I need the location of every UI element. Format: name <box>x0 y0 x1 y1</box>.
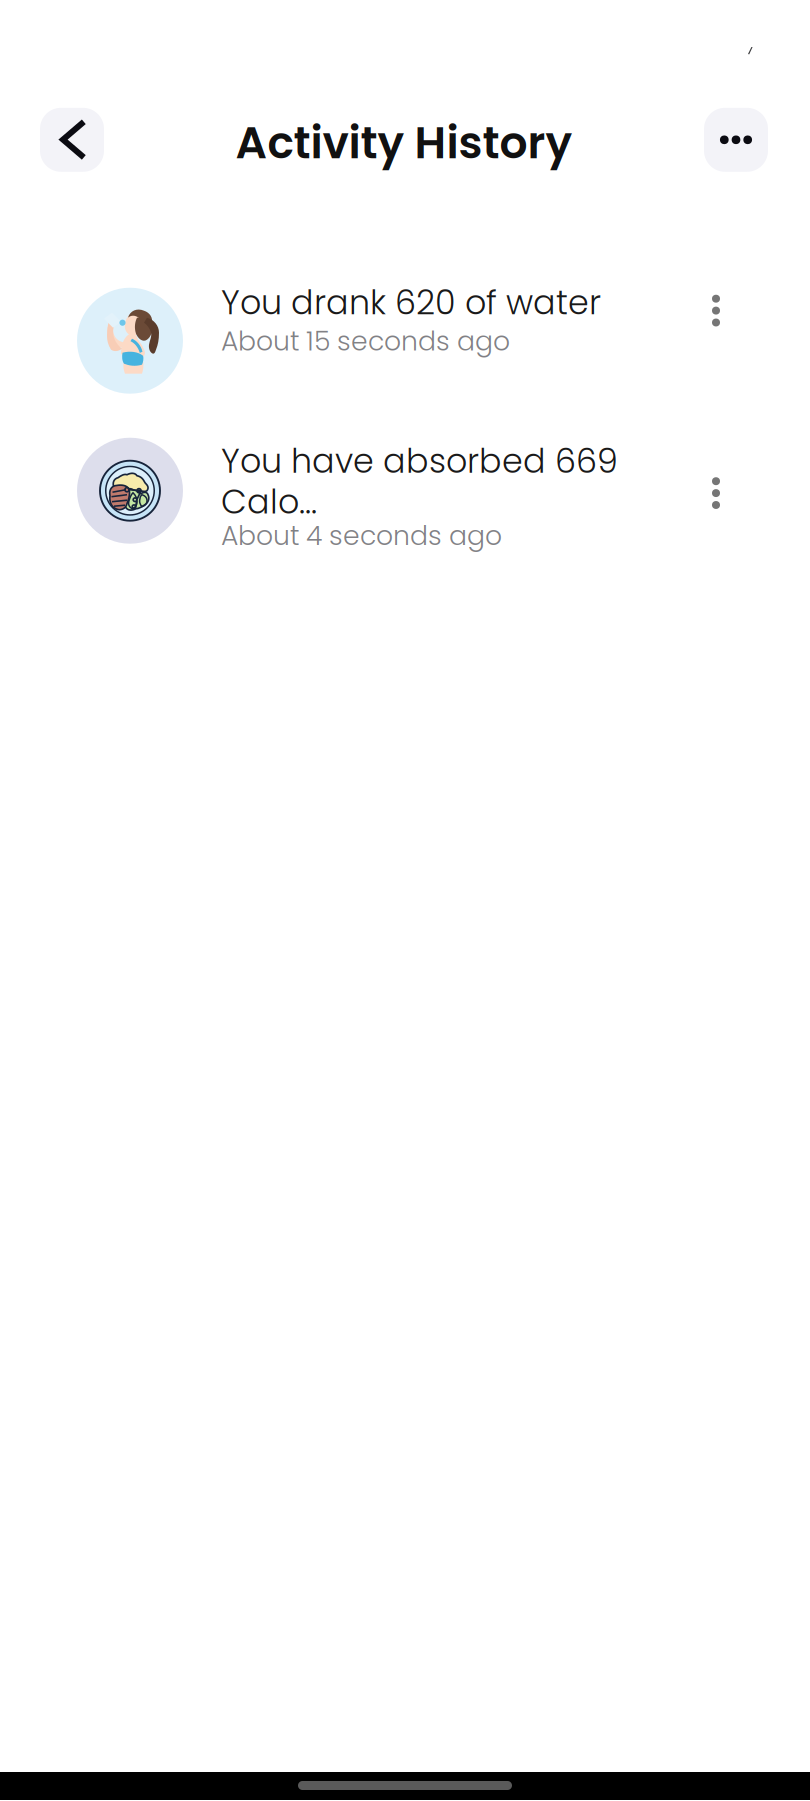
button[interactable]: More options <box>704 108 768 172</box>
staticText: Activity History <box>235 112 572 174</box>
button[interactable]: You drank 620 of water <box>0 279 810 394</box>
staticText: Calo... <box>221 478 317 525</box>
staticText: About 15 seconds ago <box>221 322 510 360</box>
staticText: You have absorbed 669 <box>221 438 618 484</box>
button[interactable]: Back <box>40 108 104 172</box>
staticText: You drank 620 of water <box>221 279 601 326</box>
button[interactable]: You have absorbed 669 <box>0 438 810 554</box>
staticText: About 4 seconds ago <box>221 517 502 554</box>
